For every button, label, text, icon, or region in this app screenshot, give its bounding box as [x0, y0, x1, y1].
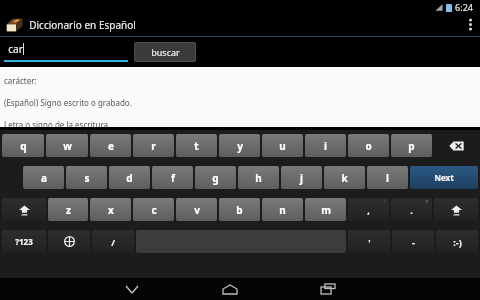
button[interactable]: car — [4, 42, 128, 62]
staticText: h — [255, 171, 262, 185]
button[interactable]: Shift — [434, 198, 478, 221]
button[interactable]: a — [23, 166, 64, 189]
staticText: e — [108, 139, 114, 153]
staticText: t — [194, 139, 199, 153]
button[interactable]: v — [176, 198, 217, 221]
staticText: b — [236, 203, 243, 217]
button[interactable]: i — [305, 134, 346, 157]
staticText: u — [279, 139, 286, 153]
staticText: - — [412, 236, 415, 248]
button[interactable]: z — [48, 198, 88, 221]
staticText: car — [8, 42, 23, 56]
button[interactable]: m — [305, 198, 346, 221]
button[interactable]: Backspace — [434, 134, 478, 157]
button[interactable]: g — [195, 166, 236, 189]
button[interactable]: Hide keyboard — [107, 278, 157, 300]
button[interactable]: o — [348, 134, 389, 157]
button[interactable]: q — [2, 134, 44, 157]
staticText: v — [194, 203, 200, 217]
staticText: f — [171, 171, 175, 185]
button[interactable]: , — [348, 198, 389, 221]
button[interactable]: d — [109, 166, 150, 189]
staticText: buscar — [151, 46, 180, 58]
staticText: Next — [434, 172, 454, 183]
staticText: l — [386, 171, 389, 185]
button[interactable]: More options — [460, 13, 480, 36]
staticText: q — [20, 139, 27, 153]
staticText: z — [66, 203, 71, 217]
button[interactable]: e — [90, 134, 131, 157]
staticText: s — [84, 171, 90, 185]
button[interactable]: Home — [205, 278, 255, 300]
staticText: :-) — [453, 236, 462, 248]
button[interactable]: n — [262, 198, 303, 221]
staticText: i — [324, 139, 327, 153]
staticText: w — [63, 139, 72, 153]
staticText: a — [41, 171, 47, 185]
staticText: ' — [383, 199, 385, 206]
button[interactable]: c — [133, 198, 174, 221]
button[interactable]: k — [324, 166, 365, 189]
button[interactable]: r — [133, 134, 174, 157]
staticText: p — [408, 139, 415, 153]
button[interactable]: Next — [410, 166, 478, 189]
button[interactable]: . — [391, 198, 432, 221]
staticText: g — [212, 171, 219, 185]
staticText: / — [111, 236, 115, 248]
button[interactable]: - — [392, 230, 434, 253]
staticText: o — [365, 139, 372, 153]
staticText: carácter: — [4, 75, 37, 86]
button[interactable]: p — [391, 134, 432, 157]
staticText: , — [367, 204, 370, 216]
button[interactable]: f — [152, 166, 193, 189]
staticText: ' — [368, 236, 371, 248]
staticText: 6:24 — [455, 1, 473, 13]
button[interactable]: ' — [348, 230, 390, 253]
button[interactable]: Shift — [2, 198, 46, 221]
button[interactable]: buscar — [134, 42, 196, 62]
staticText: ?123 — [15, 236, 33, 247]
button[interactable]: s — [66, 166, 107, 189]
staticText: Diccionario en Español — [29, 18, 136, 32]
staticText: y — [237, 139, 243, 153]
button[interactable]: / — [92, 230, 134, 253]
staticText: ? — [425, 199, 428, 206]
staticText: Letra o signo de la escritura. — [4, 119, 111, 127]
button[interactable]: w — [46, 134, 88, 157]
button[interactable]: :-) — [436, 230, 478, 253]
button[interactable]: ?123 — [2, 230, 46, 253]
staticText: j — [300, 171, 303, 185]
button[interactable]: Change keyboard — [48, 230, 90, 253]
staticText: x — [108, 203, 114, 217]
staticText: n — [279, 203, 286, 217]
staticText: (Español) Signo escrito o grabado. — [4, 97, 132, 108]
button[interactable]: l — [367, 166, 408, 189]
staticText: m — [321, 203, 331, 217]
button[interactable]: j — [281, 166, 322, 189]
button[interactable]: y — [219, 134, 260, 157]
button[interactable]: t — [176, 134, 217, 157]
button[interactable]: x — [90, 198, 131, 221]
staticText: . — [410, 204, 413, 216]
button[interactable]: h — [238, 166, 279, 189]
staticText: r — [151, 139, 156, 153]
button[interactable]: u — [262, 134, 303, 157]
button[interactable]: b — [219, 198, 260, 221]
staticText: k — [341, 171, 348, 185]
button[interactable]: Recent apps — [303, 278, 353, 300]
staticText: c — [151, 203, 157, 217]
staticText: d — [126, 171, 133, 185]
